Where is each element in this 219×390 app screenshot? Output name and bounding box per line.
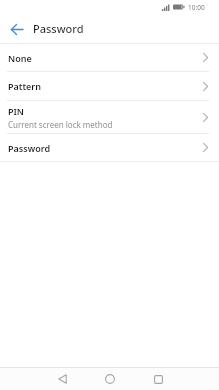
button[interactable] bbox=[0, 14, 29, 43]
staticText: None bbox=[8, 52, 32, 64]
button[interactable]: None bbox=[0, 44, 219, 71]
button[interactable] bbox=[134, 368, 182, 390]
button[interactable]: Password bbox=[0, 134, 219, 161]
button[interactable]: PIN bbox=[0, 101, 219, 133]
button[interactable] bbox=[86, 368, 134, 390]
button[interactable]: Pattern bbox=[0, 72, 219, 100]
staticText: Password bbox=[8, 142, 51, 154]
staticText: Current screen lock method bbox=[8, 119, 113, 130]
button[interactable] bbox=[38, 368, 86, 390]
staticText: Pattern bbox=[8, 80, 42, 92]
staticText: Password bbox=[33, 21, 84, 36]
staticText: 10:00 bbox=[188, 3, 205, 12]
staticText: PIN bbox=[8, 105, 25, 117]
